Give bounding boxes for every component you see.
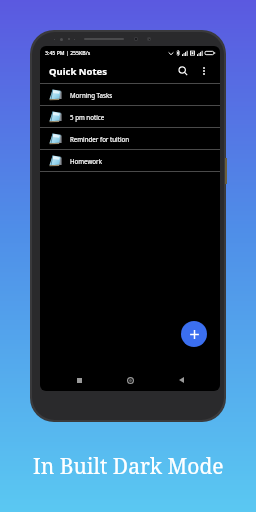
button[interactable]: Recent apps bbox=[70, 371, 88, 389]
staticText: Quick Notes bbox=[49, 65, 108, 78]
staticText: 5 pm notice bbox=[70, 113, 105, 121]
button[interactable]: Add note bbox=[181, 321, 207, 347]
staticText: Morning Tasks bbox=[70, 91, 113, 99]
staticText: 3:45 PM | 255KB/s bbox=[45, 49, 91, 56]
button[interactable]: Homework bbox=[40, 150, 220, 171]
button[interactable]: Morning Tasks bbox=[40, 84, 220, 105]
button[interactable]: Back bbox=[172, 371, 190, 389]
staticText: Homework bbox=[70, 157, 102, 165]
button[interactable]: 5 pm notice bbox=[40, 106, 220, 127]
staticText: Reminder for tuition bbox=[70, 135, 130, 143]
button[interactable]: Search bbox=[174, 62, 192, 80]
button[interactable]: Reminder for tuition bbox=[40, 128, 220, 149]
staticText: In Built Dark Mode bbox=[33, 452, 224, 481]
button[interactable]: Home bbox=[121, 371, 139, 389]
button[interactable]: More options bbox=[195, 62, 213, 80]
